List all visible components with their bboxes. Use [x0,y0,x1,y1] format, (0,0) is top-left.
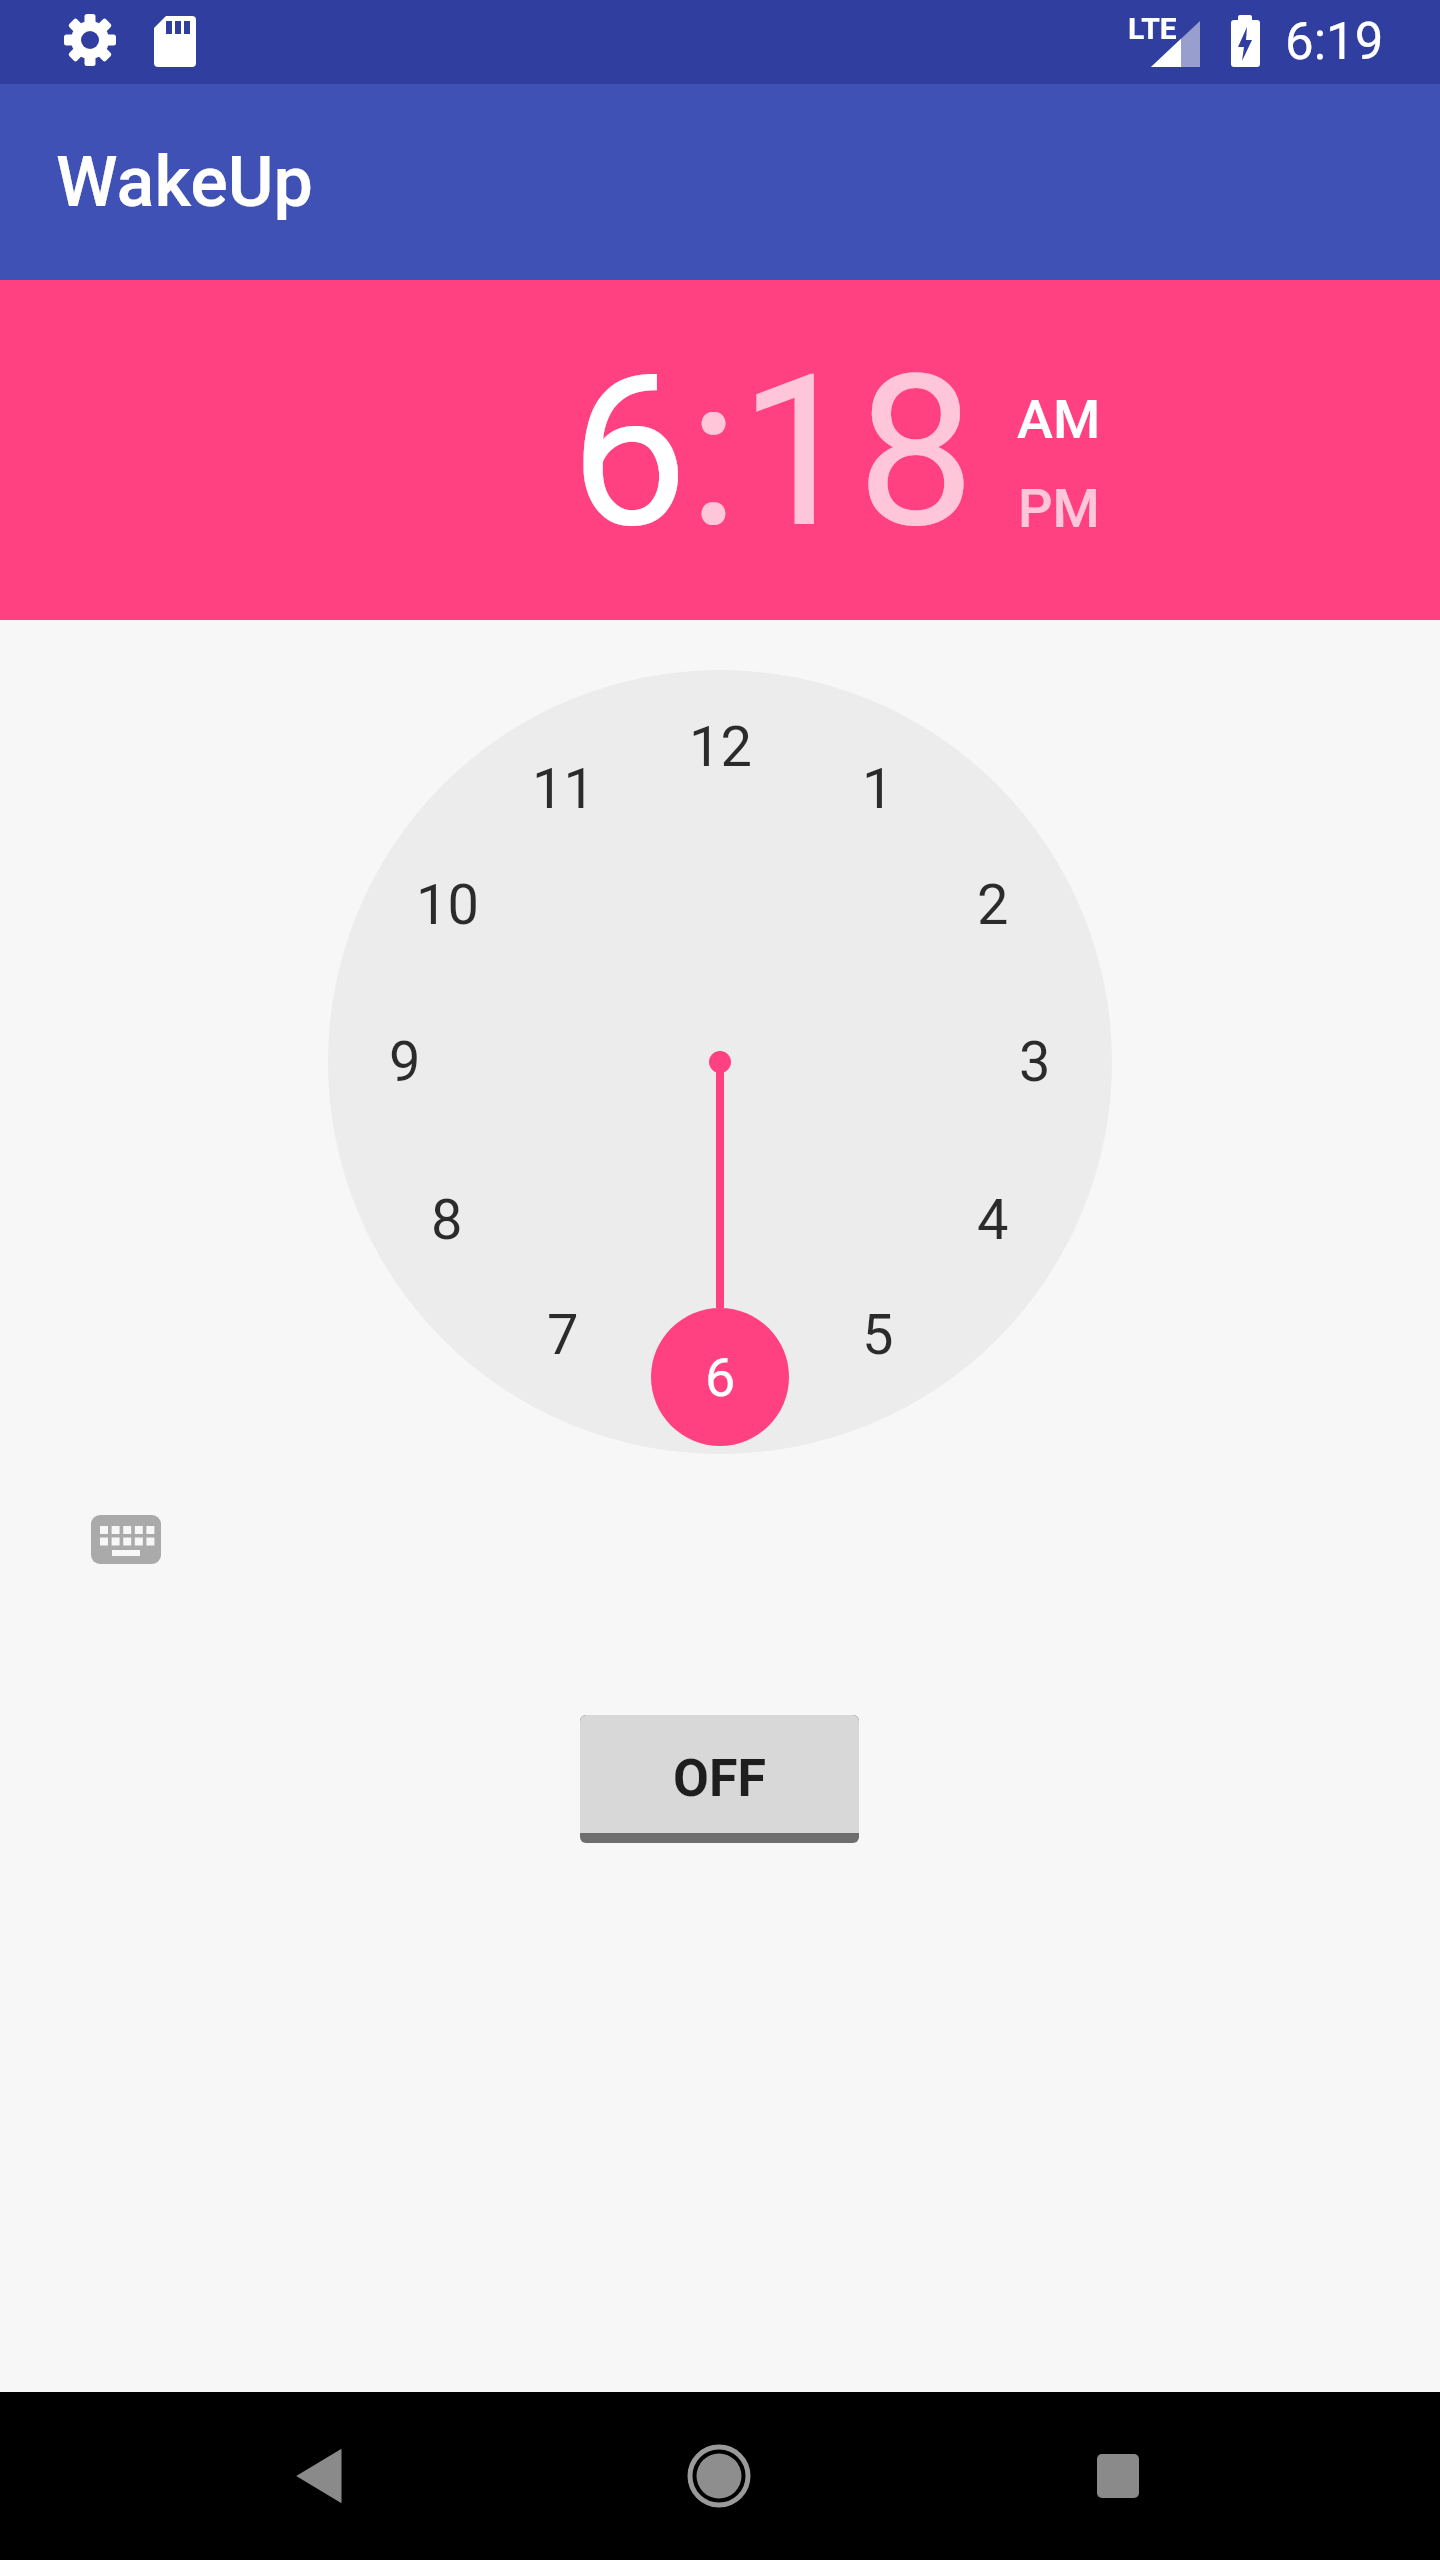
button[interactable]: 6 [650,1307,790,1447]
staticText: 6:18 [570,329,975,575]
button[interactable]: 5 [818,1275,938,1395]
staticText: 10 [416,872,479,938]
staticText: WakeUp [56,141,313,223]
staticText: 6:19 [1285,12,1384,72]
staticText: PM [1018,477,1100,540]
staticText: 9 [389,1029,421,1095]
button[interactable]: 2 [933,845,1053,965]
button[interactable]: PM [959,458,1159,558]
button[interactable] [650,2427,790,2527]
staticText: 11 [532,756,595,822]
button[interactable] [250,2427,390,2527]
button[interactable]: 11 [503,729,623,849]
staticText: 7 [547,1302,579,1368]
button[interactable]: AM [959,369,1159,469]
staticText: 8 [431,1187,463,1253]
staticText: AM [1017,388,1101,451]
button[interactable]: 7 [503,1275,623,1395]
button[interactable]: 3 [975,1002,1095,1122]
staticText: 4 [977,1187,1009,1253]
button[interactable]: 10 [387,845,507,965]
staticText: 1 [862,756,894,822]
staticText: 3 [1019,1029,1051,1095]
button[interactable]: OFF [580,1715,859,1843]
staticText: 2 [977,872,1009,938]
staticText: 5 [862,1302,894,1368]
button[interactable]: 1 [818,729,938,849]
staticText: 6 [705,1346,736,1409]
staticText: 12 [689,714,752,780]
button[interactable] [1048,2427,1188,2527]
staticText: LTE [1128,11,1177,46]
staticText: OFF [673,1748,766,1809]
button[interactable]: 9 [345,1002,465,1122]
button[interactable]: 4 [933,1160,1053,1280]
button[interactable]: 12 [660,687,780,807]
button[interactable]: 8 [387,1160,507,1280]
